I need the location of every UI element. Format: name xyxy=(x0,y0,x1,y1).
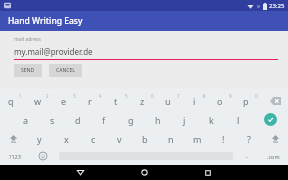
staticText: c xyxy=(91,133,96,145)
staticText: l xyxy=(237,114,240,126)
button[interactable]: g xyxy=(117,110,144,129)
staticText: v xyxy=(117,133,122,145)
button[interactable]: Emoji xyxy=(30,148,56,164)
button[interactable]: ! xyxy=(210,129,236,148)
button[interactable]: Backspace xyxy=(262,91,288,110)
staticText: m xyxy=(193,133,202,145)
button[interactable]: w xyxy=(27,91,54,110)
staticText: 1 xyxy=(19,93,22,99)
staticText: 0 xyxy=(255,93,258,99)
staticText: a xyxy=(23,114,29,126)
button[interactable]: Enter xyxy=(252,110,288,129)
staticText: z xyxy=(140,95,145,107)
staticText: n xyxy=(168,133,174,145)
button[interactable]: v xyxy=(106,129,132,148)
staticText: h xyxy=(155,114,161,126)
staticText: j xyxy=(183,114,186,126)
button[interactable]: y xyxy=(26,129,53,148)
button[interactable]: .com xyxy=(258,148,288,164)
button[interactable]: c xyxy=(80,129,106,148)
button[interactable]: m xyxy=(184,129,210,148)
button[interactable]: l xyxy=(225,110,252,129)
staticText: CANCEL xyxy=(56,67,75,74)
staticText: g xyxy=(128,114,134,126)
staticText: 2 xyxy=(46,93,49,99)
button[interactable]: Shift xyxy=(0,129,26,148)
button[interactable]: r xyxy=(80,91,106,110)
staticText: d xyxy=(75,114,81,126)
staticText: ?123 xyxy=(9,153,21,160)
staticText: SEND xyxy=(21,67,35,74)
button[interactable]: Home xyxy=(112,165,176,180)
button[interactable]: CANCEL xyxy=(49,64,82,77)
staticText: my.mail@provider.de xyxy=(14,46,93,57)
button[interactable]: SEND xyxy=(14,64,42,77)
staticText: i xyxy=(193,95,196,107)
staticText: b xyxy=(142,133,148,145)
button[interactable]: q xyxy=(0,91,27,110)
button[interactable]: x xyxy=(53,129,80,148)
staticText: .com xyxy=(267,153,280,160)
staticText: 5 xyxy=(125,93,128,99)
button[interactable]: d xyxy=(65,110,91,129)
staticText: k xyxy=(209,114,214,126)
button[interactable]: h xyxy=(144,110,171,129)
button[interactable]: ? xyxy=(236,129,262,148)
staticText: 23:25 xyxy=(269,2,285,10)
button[interactable]: o xyxy=(210,91,236,110)
button[interactable]: . xyxy=(236,148,258,164)
staticText: t xyxy=(114,95,118,107)
staticText: 8 xyxy=(203,93,206,99)
button[interactable]: ?123 xyxy=(0,148,30,164)
staticText: y xyxy=(37,133,42,145)
staticText: q xyxy=(8,95,14,107)
staticText: 6 xyxy=(151,93,154,99)
staticText: w xyxy=(34,95,42,107)
button[interactable]: k xyxy=(198,110,225,129)
button[interactable]: f xyxy=(91,110,117,129)
staticText: r xyxy=(88,95,92,107)
staticText: 9 xyxy=(229,93,232,99)
staticText: ! xyxy=(222,133,225,145)
staticText: e xyxy=(61,95,67,107)
staticText: Hand Writing Easy xyxy=(8,15,83,27)
staticText: ? xyxy=(247,133,251,145)
button[interactable]: Back xyxy=(48,165,112,180)
button[interactable]: e xyxy=(54,91,80,110)
staticText: f xyxy=(102,114,106,126)
staticText: . xyxy=(246,151,248,161)
button[interactable]: z xyxy=(132,91,158,110)
staticText: mail adress xyxy=(14,36,41,43)
button[interactable]: s xyxy=(39,110,65,129)
staticText: 7 xyxy=(177,93,180,99)
staticText: x xyxy=(64,133,69,145)
button[interactable]: u xyxy=(158,91,184,110)
button[interactable]: a xyxy=(13,110,39,129)
button[interactable]: j xyxy=(171,110,198,129)
staticText: u xyxy=(165,95,171,107)
button[interactable]: Recents xyxy=(176,165,240,180)
staticText: p xyxy=(243,95,249,107)
staticText: 4 xyxy=(99,93,102,99)
button[interactable]: p xyxy=(236,91,262,110)
button[interactable]: i xyxy=(184,91,210,110)
staticText: o xyxy=(217,95,223,107)
button[interactable]: n xyxy=(158,129,184,148)
staticText: 3 xyxy=(73,93,76,99)
button[interactable]: b xyxy=(132,129,158,148)
button[interactable]: Shift right xyxy=(262,129,288,148)
button[interactable]: t xyxy=(106,91,132,110)
staticText: s xyxy=(50,114,55,126)
